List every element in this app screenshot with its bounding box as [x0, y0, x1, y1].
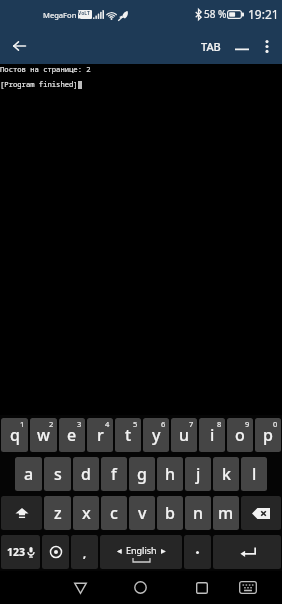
staticText: h — [165, 463, 176, 485]
button[interactable]: n — [185, 496, 211, 530]
button[interactable]: Space, English — [100, 535, 182, 569]
staticText: 2 — [49, 419, 54, 429]
staticText: Постов на странице: 2 — [0, 64, 91, 74]
button[interactable]: w — [30, 418, 57, 452]
button[interactable]: c — [101, 496, 127, 530]
staticText: 1 — [20, 419, 25, 429]
button[interactable]: o — [227, 418, 253, 452]
button[interactable]: m — [213, 496, 239, 530]
button[interactable]: l — [241, 457, 267, 491]
button[interactable]: b — [157, 496, 183, 530]
staticText: English — [126, 544, 157, 556]
button[interactable]: k — [213, 457, 239, 491]
button[interactable]: , — [71, 535, 98, 569]
staticText: j — [196, 463, 201, 485]
button[interactable]: u — [171, 418, 197, 452]
staticText: x — [82, 502, 91, 524]
button[interactable]: t — [115, 418, 141, 452]
staticText: , — [83, 546, 87, 561]
button[interactable]: Hide keyboard — [231, 571, 264, 604]
button[interactable]: TAB — [192, 28, 230, 64]
staticText: 5 — [133, 419, 138, 429]
staticText: [Program finished] — [0, 79, 78, 89]
staticText: ◀ — [117, 547, 122, 554]
staticText: 8 — [217, 419, 222, 429]
button[interactable]: i — [199, 418, 225, 452]
staticText: n — [193, 502, 204, 524]
button[interactable]: x — [73, 496, 99, 530]
staticText: u — [179, 424, 190, 446]
staticText: m — [218, 502, 234, 524]
button[interactable]: s — [44, 457, 71, 491]
staticText: q — [10, 424, 20, 446]
staticText: 0 — [273, 419, 278, 429]
staticText: k — [222, 463, 231, 485]
button[interactable]: Enter — [213, 535, 281, 569]
staticText: o — [235, 424, 245, 446]
button[interactable]: z — [44, 496, 71, 530]
staticText: s — [54, 463, 62, 485]
staticText: 4 — [105, 419, 110, 429]
staticText: z — [54, 502, 62, 524]
staticText: p — [263, 424, 273, 446]
button[interactable]: g — [129, 457, 155, 491]
button[interactable]: Recents — [185, 571, 218, 604]
button[interactable]: p — [255, 418, 281, 452]
button[interactable]: a — [15, 457, 42, 491]
staticText: l — [252, 463, 257, 485]
staticText: c — [110, 502, 118, 524]
button[interactable] — [184, 535, 211, 569]
staticText: f — [111, 463, 117, 485]
button[interactable]: q — [1, 418, 28, 452]
staticText: 123 — [7, 545, 26, 559]
staticText: VoLTE — [78, 10, 92, 19]
staticText: w — [37, 424, 50, 446]
button[interactable]: v — [129, 496, 155, 530]
button[interactable]: h — [157, 457, 183, 491]
button[interactable]: y — [143, 418, 169, 452]
staticText: r — [97, 424, 104, 446]
button[interactable]: Minimize — [228, 28, 256, 64]
staticText: a — [24, 463, 34, 485]
button[interactable]: Back — [1, 28, 37, 64]
button[interactable]: Emoji — [42, 535, 69, 569]
staticText: 9 — [245, 419, 250, 429]
staticText: 7 — [189, 419, 194, 429]
button[interactable]: j — [185, 457, 211, 491]
button[interactable]: Shift — [1, 496, 42, 530]
button[interactable]: Backspace — [241, 496, 281, 530]
staticText: 3 — [77, 419, 82, 429]
staticText: ▶ — [161, 547, 166, 554]
button[interactable]: r — [87, 418, 113, 452]
staticText: g — [137, 463, 147, 485]
staticText: y — [152, 424, 161, 446]
button[interactable]: Home — [124, 571, 157, 604]
staticText: v — [138, 502, 147, 524]
staticText: d — [81, 463, 91, 485]
button[interactable]: e — [59, 418, 85, 452]
button[interactable]: d — [73, 457, 99, 491]
staticText: i — [210, 424, 215, 446]
button[interactable]: Symbols and voice input — [1, 535, 40, 569]
staticText: 6 — [161, 419, 166, 429]
button[interactable]: More options — [253, 28, 281, 64]
staticText: t — [125, 424, 132, 446]
staticText: TAB — [201, 39, 221, 54]
staticText: b — [165, 502, 175, 524]
button[interactable]: f — [101, 457, 127, 491]
button[interactable]: Back — [64, 571, 97, 604]
staticText: MegaFon — [43, 10, 77, 20]
staticText: 19:21 — [248, 6, 279, 22]
staticText: 58 % — [204, 7, 227, 21]
staticText: e — [67, 424, 77, 446]
